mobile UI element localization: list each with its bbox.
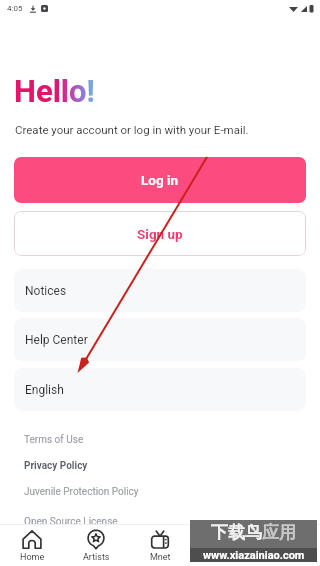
staticText: 应用 (262, 522, 296, 543)
staticText: Home (20, 552, 45, 563)
staticText: Mnet (150, 552, 171, 563)
button[interactable]: Notices (14, 269, 306, 312)
staticText: Hello! (14, 73, 95, 109)
button[interactable]: Home (0, 525, 64, 566)
staticText: Juvenile Protection Policy (24, 486, 139, 498)
button[interactable]: Artists (64, 525, 128, 566)
staticText: www.xiazainiao.com (203, 549, 305, 562)
staticText: Sign up (137, 226, 183, 242)
button[interactable]: Mnet (128, 525, 192, 566)
button[interactable]: Sign up (14, 211, 306, 256)
staticText: Create your account or log in with your … (15, 123, 249, 136)
staticText: Privacy Policy (24, 460, 88, 472)
staticText: English (25, 383, 64, 397)
staticText: Help Center (25, 333, 88, 347)
staticText: Open Source License (24, 516, 118, 528)
button[interactable]: Log in (14, 157, 306, 203)
button[interactable]: Juvenile Protection Policy (24, 486, 139, 498)
staticText: Notices (25, 284, 67, 298)
staticText: 下载鸟 (211, 522, 262, 543)
button[interactable]: Terms of Use (24, 434, 84, 446)
button[interactable]: Open Source License (24, 516, 118, 528)
staticText: Terms of Use (24, 434, 84, 446)
button[interactable]: Help Center (14, 318, 306, 361)
button[interactable]: English (14, 368, 306, 411)
staticText: Log in (141, 172, 179, 188)
staticText: Artists (83, 552, 110, 563)
staticText: 4:05 (7, 4, 23, 13)
button[interactable]: Privacy Policy (24, 460, 88, 472)
